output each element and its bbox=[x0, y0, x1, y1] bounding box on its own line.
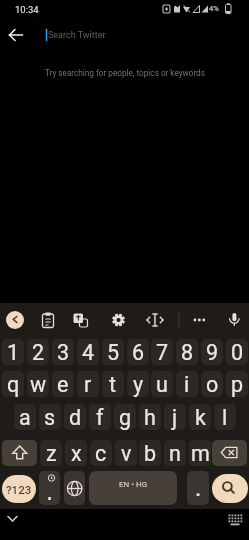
staticText: f bbox=[96, 405, 104, 430]
staticText: i bbox=[184, 372, 190, 397]
staticText: 4% bbox=[209, 4, 219, 13]
staticText: z bbox=[46, 441, 57, 466]
staticText: w bbox=[30, 372, 47, 397]
staticText: k bbox=[195, 405, 206, 430]
staticText: l bbox=[222, 405, 228, 430]
button[interactable]: w bbox=[27, 371, 49, 397]
staticText: n bbox=[169, 441, 181, 466]
button[interactable]: n bbox=[164, 440, 186, 466]
button[interactable] bbox=[212, 474, 248, 503]
button[interactable]: 0 bbox=[226, 339, 248, 365]
staticText: 10:34 bbox=[15, 4, 39, 15]
button[interactable]: 9 bbox=[201, 339, 223, 365]
button[interactable]: ?123 bbox=[2, 475, 36, 503]
button[interactable]: o bbox=[201, 371, 223, 397]
staticText: v bbox=[121, 441, 132, 466]
button[interactable]: q bbox=[2, 371, 24, 397]
staticText: 2 bbox=[32, 340, 45, 365]
staticText: Try searching for people, topics or keyw… bbox=[45, 68, 205, 78]
staticText: Search Twitter bbox=[48, 30, 106, 41]
staticText: h bbox=[144, 405, 156, 430]
staticText: e bbox=[57, 372, 69, 397]
button[interactable] bbox=[89, 471, 177, 505]
button[interactable]: l bbox=[214, 404, 236, 430]
button[interactable]: 7 bbox=[151, 339, 173, 365]
button[interactable]: 1 bbox=[2, 339, 24, 365]
button[interactable]: 8 bbox=[176, 339, 198, 365]
staticText: y bbox=[133, 372, 144, 397]
staticText: r bbox=[84, 372, 92, 397]
staticText: 1 bbox=[7, 340, 20, 365]
button[interactable]: i bbox=[176, 371, 198, 397]
staticText: 3 bbox=[57, 340, 70, 365]
button[interactable]: v bbox=[115, 440, 137, 466]
button[interactable]: f bbox=[89, 404, 111, 430]
staticText: o bbox=[206, 372, 219, 397]
button[interactable]: a bbox=[14, 404, 36, 430]
staticText: q bbox=[7, 372, 20, 397]
button[interactable]: 6 bbox=[127, 339, 149, 365]
staticText: p bbox=[231, 372, 244, 397]
staticText: 9 bbox=[206, 340, 219, 365]
button[interactable]: Search Twitter bbox=[44, 24, 214, 46]
staticText: a bbox=[19, 405, 31, 430]
button[interactable]: z bbox=[40, 440, 62, 466]
button[interactable]: u bbox=[151, 371, 173, 397]
button[interactable]: c bbox=[90, 440, 112, 466]
staticText: s bbox=[44, 405, 56, 430]
staticText: c bbox=[95, 441, 107, 466]
staticText: . bbox=[195, 474, 202, 498]
button[interactable] bbox=[6, 311, 24, 329]
button[interactable]: p bbox=[226, 371, 248, 397]
staticText: u bbox=[156, 372, 168, 397]
button[interactable]: x bbox=[65, 440, 87, 466]
button[interactable] bbox=[0, 21, 38, 49]
staticText: 0 bbox=[231, 340, 244, 365]
staticText: t bbox=[109, 372, 117, 397]
staticText: 8 bbox=[181, 340, 194, 365]
button[interactable]: b bbox=[139, 440, 161, 466]
button[interactable]: 2 bbox=[27, 339, 49, 365]
button[interactable]: m bbox=[189, 440, 211, 466]
staticText: 4 bbox=[82, 340, 95, 365]
staticText: d bbox=[69, 405, 82, 430]
button[interactable]: e bbox=[52, 371, 74, 397]
staticText: ?123 bbox=[6, 483, 32, 496]
staticText: 5 bbox=[107, 340, 120, 365]
button[interactable]: 3 bbox=[52, 339, 74, 365]
button[interactable]: 5 bbox=[102, 339, 124, 365]
button[interactable] bbox=[187, 471, 209, 505]
button[interactable]: t bbox=[102, 371, 124, 397]
button[interactable]: y bbox=[127, 371, 149, 397]
button[interactable]: h bbox=[139, 404, 161, 430]
staticText: 7 bbox=[156, 340, 169, 365]
staticText: , bbox=[47, 478, 52, 500]
staticText: j bbox=[172, 405, 178, 430]
staticText: b bbox=[144, 441, 157, 466]
staticText: EN • HG bbox=[119, 480, 148, 489]
button[interactable] bbox=[212, 440, 247, 466]
button[interactable] bbox=[2, 440, 37, 466]
button[interactable]: k bbox=[189, 404, 211, 430]
staticText: g bbox=[119, 405, 132, 430]
button[interactable]: s bbox=[39, 404, 61, 430]
button[interactable]: d bbox=[64, 404, 86, 430]
button[interactable]: r bbox=[77, 371, 99, 397]
button[interactable] bbox=[64, 471, 85, 505]
staticText: m bbox=[191, 441, 210, 466]
button[interactable]: j bbox=[164, 404, 186, 430]
button[interactable]: 4 bbox=[77, 339, 99, 365]
staticText: 6 bbox=[132, 340, 145, 365]
staticText: x bbox=[71, 441, 82, 466]
button[interactable] bbox=[39, 471, 60, 505]
button[interactable]: g bbox=[114, 404, 136, 430]
